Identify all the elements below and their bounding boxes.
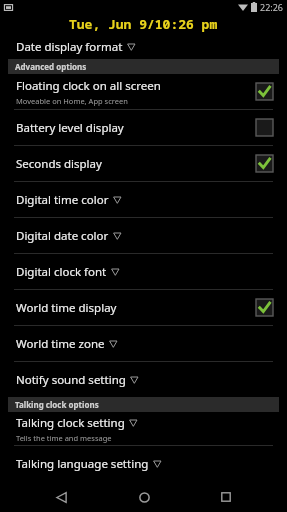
staticText: Moveable on Home, App screen [16,96,128,106]
staticText: Seconds display [16,156,102,172]
button[interactable]: Back [39,482,83,512]
staticText: Tue, Jun 9/10:26 pm [69,15,218,33]
staticText: Digital time color [16,192,109,208]
button[interactable]: Unchecked [256,119,273,136]
button[interactable]: Notify sound setting [0,362,287,397]
staticText: Talking clock options [15,399,99,410]
staticText: Battery level display [16,120,124,136]
button[interactable]: Digital date color [0,218,287,253]
staticText: Floating clock on all screen [16,78,161,94]
button[interactable]: Recent apps [204,482,248,512]
button[interactable]: Checked [256,155,273,172]
button[interactable]: Digital time color [0,182,287,217]
button[interactable]: Battery level display [0,110,287,145]
staticText: World time display [16,300,117,316]
button[interactable]: Checked [256,299,273,316]
staticText: Date display format [16,39,123,55]
staticText: Talking clock setting [16,415,125,431]
button[interactable]: Talking language setting [0,446,287,481]
button[interactable]: Checked [256,83,273,100]
staticText: Talking language setting [16,456,149,472]
staticText: Digital date color [16,228,109,244]
button[interactable]: Digital clock font [0,254,287,289]
button[interactable]: Seconds display [0,146,287,181]
staticText: Digital clock font [16,264,107,280]
button[interactable]: World time zone [0,326,287,361]
button[interactable]: Floating clock on all screen [0,74,287,109]
staticText: World time zone [16,336,105,352]
staticText: Notify sound setting [16,372,126,388]
button[interactable]: Talking clock setting [0,412,287,445]
staticText: 22:26 [260,1,284,13]
staticText: Tells the time and message [16,433,112,443]
button[interactable]: Home [122,482,166,512]
button[interactable]: Date display format [0,34,287,59]
staticText: Advanced options [15,61,87,72]
button[interactable]: World time display [0,290,287,325]
